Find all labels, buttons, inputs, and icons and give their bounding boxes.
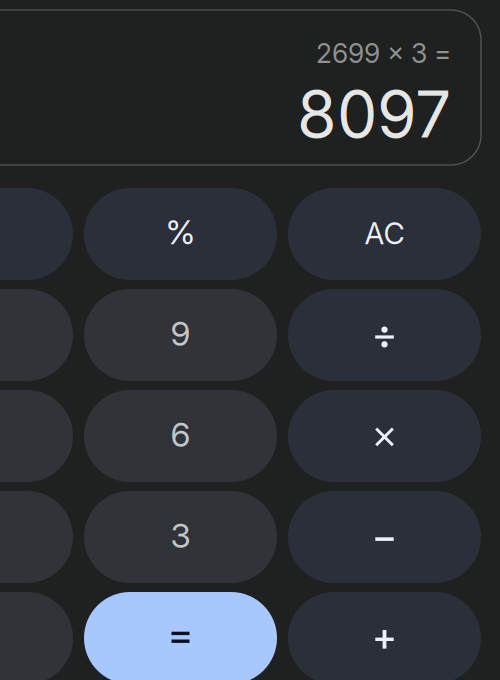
staticText: 2699 × 3 = <box>316 37 451 69</box>
button[interactable]: 5 <box>0 390 73 482</box>
button[interactable]: Minus <box>288 491 481 583</box>
button[interactable]: Plus <box>288 592 481 680</box>
button[interactable]: Decimal point <box>0 592 73 680</box>
button[interactable]: Parentheses <box>0 188 73 280</box>
button[interactable]: Multiply <box>288 390 481 482</box>
button[interactable]: % <box>84 188 277 280</box>
button[interactable]: 3 <box>84 491 277 583</box>
button[interactable]: 2 <box>0 491 73 583</box>
button[interactable]: AC <box>288 188 481 280</box>
staticText: AC <box>364 216 404 251</box>
button[interactable]: 9 <box>84 289 277 381</box>
button[interactable]: 8 <box>0 289 73 381</box>
button[interactable]: Divide <box>288 289 481 381</box>
staticText: 6 <box>170 414 190 455</box>
staticText: 8097 <box>297 75 451 153</box>
staticText: 9 <box>170 313 190 354</box>
button[interactable]: Equals <box>84 592 277 680</box>
staticText: 3 <box>170 515 190 556</box>
button[interactable]: 6 <box>84 390 277 482</box>
staticText: % <box>165 212 195 252</box>
